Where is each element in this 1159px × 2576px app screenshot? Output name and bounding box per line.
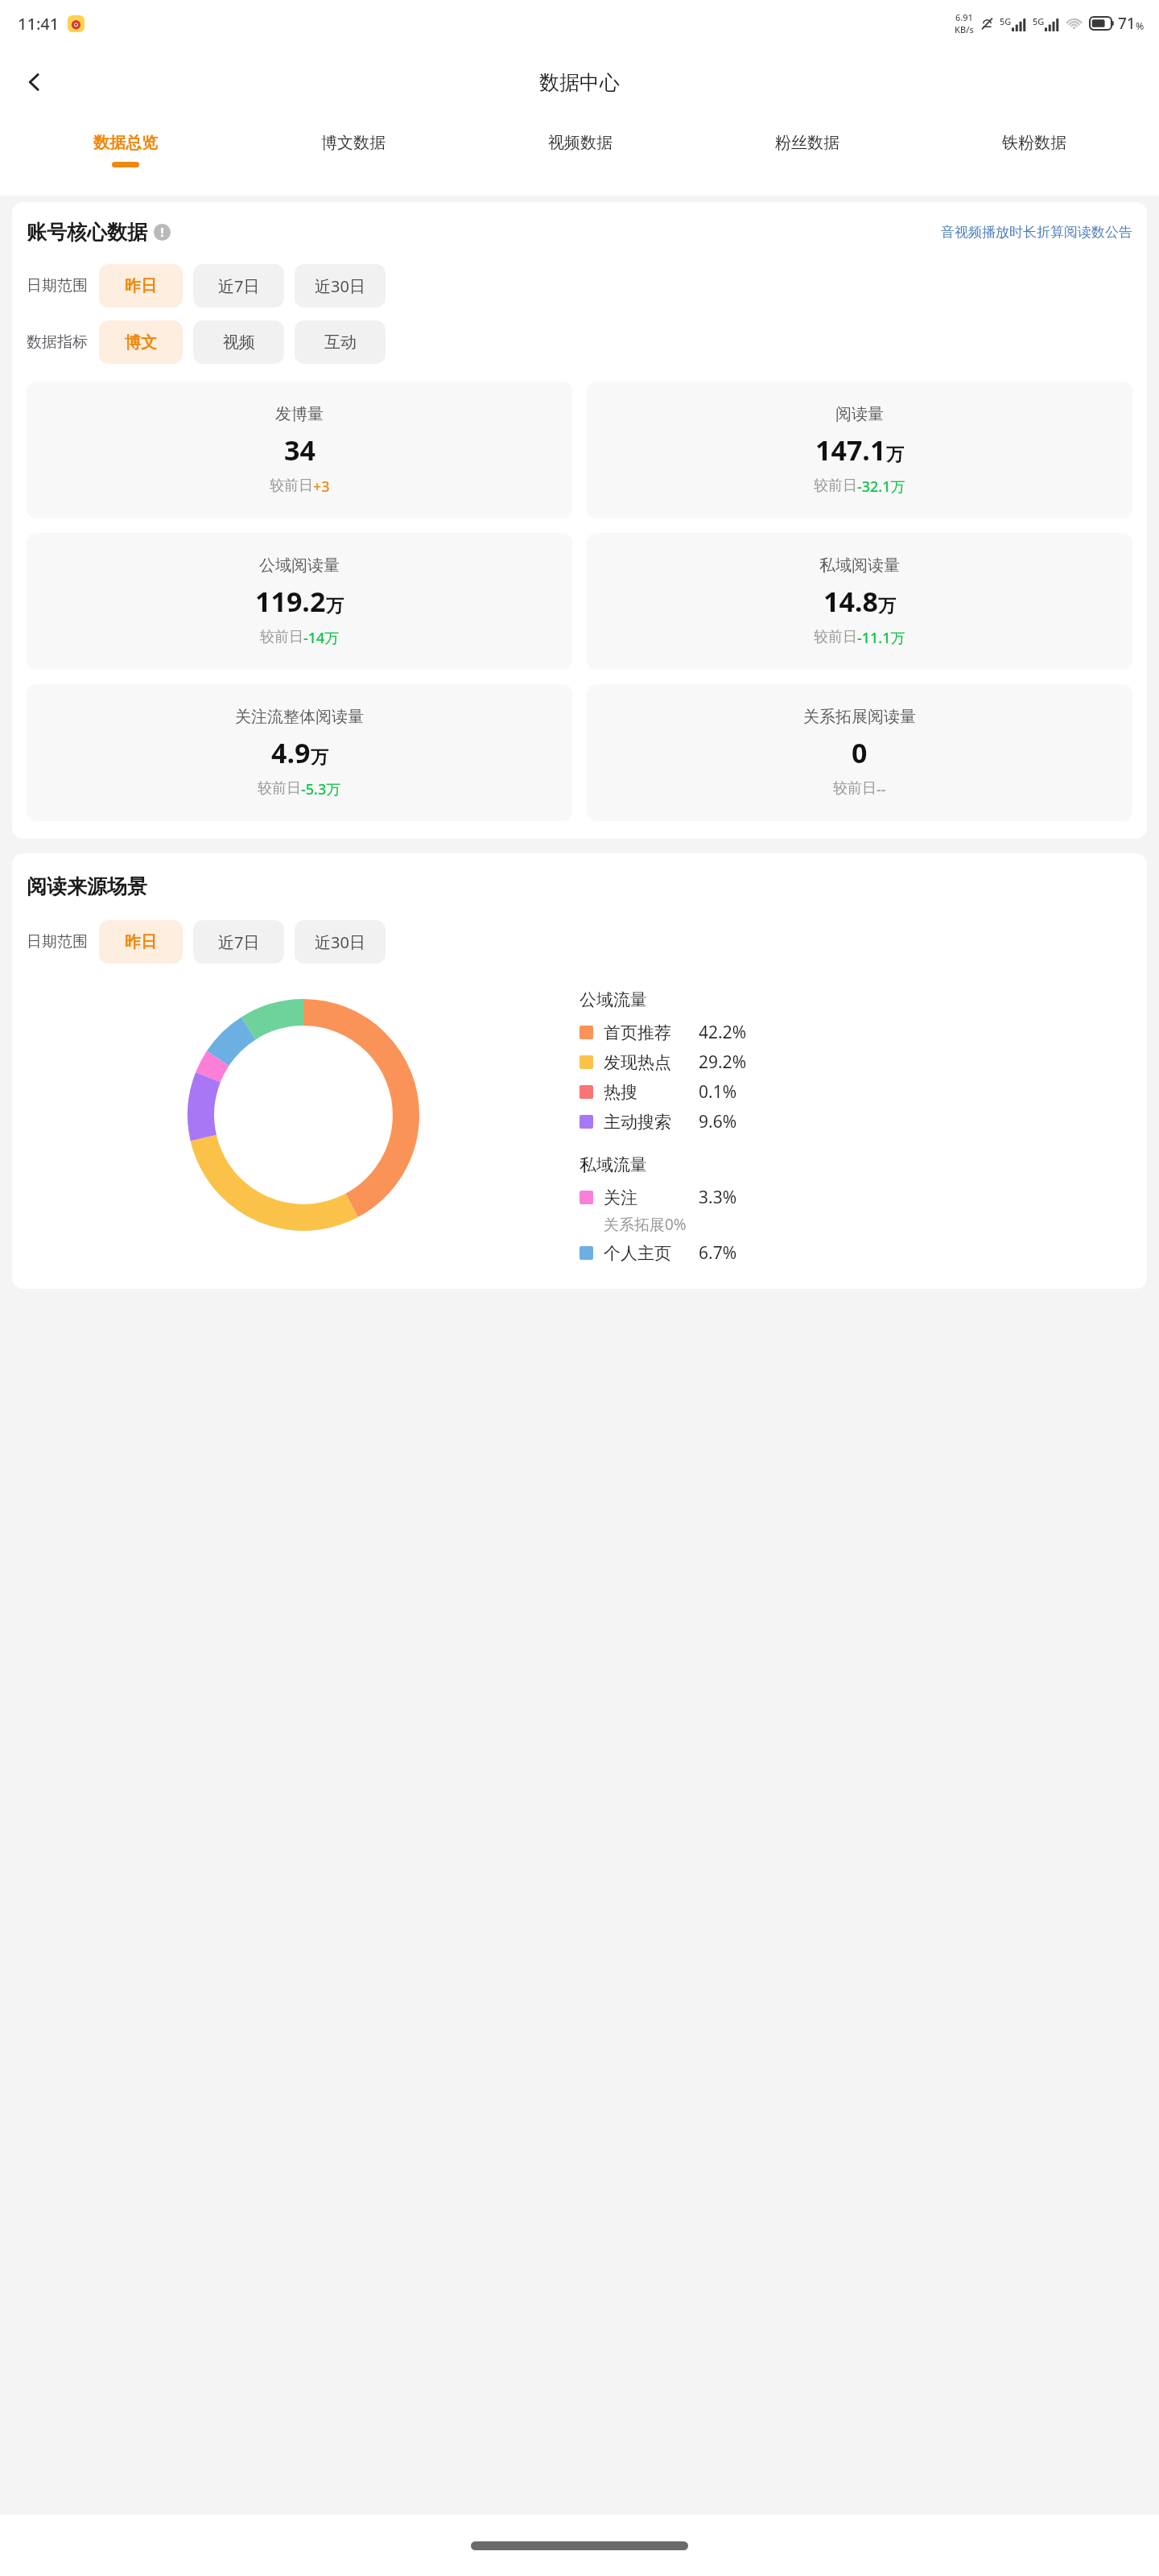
staticText: 主动搜索 [604, 1112, 699, 1133]
staticText: 11:41 [18, 13, 60, 35]
staticText: 较前日 [260, 628, 303, 646]
staticText: 71 [1118, 13, 1136, 34]
staticText: 29.2% [699, 1051, 747, 1074]
staticText: 近7日 [218, 931, 260, 953]
staticText: 较前日 [833, 779, 876, 798]
button[interactable]: 博文 [99, 320, 183, 364]
staticText: 较前日 [270, 477, 313, 495]
staticText: 日期范围 [27, 276, 88, 295]
staticText: 关系拓展阅读量 [803, 707, 916, 727]
staticText: 4.9 [271, 734, 311, 771]
staticText: +3 [313, 477, 330, 497]
staticText: 个人主页 [604, 1243, 699, 1264]
staticText: 万 [886, 444, 904, 466]
button[interactable]: 互动 [295, 320, 386, 364]
staticText: 阅读量 [835, 404, 884, 424]
staticText: 关注流整体阅读量 [235, 707, 364, 727]
staticText: 万 [878, 595, 896, 617]
button[interactable]: 热搜 [579, 1077, 1132, 1107]
staticText: 昨日 [125, 932, 157, 952]
staticText: 较前日 [814, 477, 857, 495]
staticText: 数据指标 [27, 332, 88, 352]
staticText: 万 [311, 746, 328, 769]
staticText: 昨日 [125, 276, 157, 296]
button[interactable]: 公域阅读量 [27, 533, 572, 670]
button[interactable]: 返回 [10, 57, 60, 107]
staticText: 铁粉数据 [1002, 133, 1066, 153]
staticText: 博文 [125, 332, 157, 353]
button[interactable]: 个人主页 [579, 1238, 1132, 1268]
staticText: 阅读来源场景 [27, 874, 147, 899]
staticText: 5G [1033, 15, 1045, 27]
button[interactable]: 主动搜索 [579, 1107, 1132, 1137]
staticText: 万 [326, 595, 344, 617]
staticText: 关系拓展0% [604, 1214, 687, 1235]
staticText: -- [876, 779, 886, 799]
staticText: 发博量 [275, 404, 324, 424]
staticText: 119.2 [255, 583, 326, 620]
button[interactable]: 数据总览 [11, 118, 239, 196]
staticText: 热搜 [604, 1082, 699, 1103]
staticText: -14万 [303, 628, 340, 648]
staticText: 6.91 [955, 11, 973, 23]
staticText: 数据总览 [93, 133, 158, 153]
staticText: 发现热点 [604, 1052, 699, 1073]
staticText: 互动 [324, 332, 357, 353]
staticText: 0 [852, 734, 868, 771]
button[interactable]: 昨日 [99, 920, 183, 964]
button[interactable]: 铁粉数据 [921, 118, 1148, 196]
button[interactable]: 发博量 [27, 382, 572, 518]
staticText: 公域流量 [579, 989, 647, 1010]
staticText: 公域阅读量 [259, 555, 340, 576]
staticText: 较前日 [814, 628, 857, 646]
button[interactable]: 首页推荐 [579, 1018, 1132, 1047]
staticText: KB/s [955, 23, 974, 35]
staticText: 14.8 [823, 583, 878, 620]
staticText: 数据中心 [539, 70, 620, 95]
button[interactable]: 发现热点 [579, 1047, 1132, 1077]
staticText: 6.7% [699, 1241, 737, 1265]
button[interactable]: 博文数据 [239, 118, 467, 196]
button[interactable]: 关注流整体阅读量 [27, 684, 572, 821]
staticText: 日期范围 [27, 932, 88, 952]
button[interactable]: 昨日 [99, 264, 183, 308]
staticText: 私域阅读量 [819, 555, 900, 576]
staticText: 视频 [223, 332, 255, 353]
staticText: 9.6% [699, 1110, 737, 1133]
button[interactable]: 粉丝数据 [694, 118, 921, 196]
button[interactable]: 视频数据 [467, 118, 694, 196]
button[interactable]: 近7日 [193, 920, 284, 964]
staticText: -11.1万 [857, 628, 905, 648]
button[interactable]: 近30日 [295, 264, 386, 308]
staticText: 首页推荐 [604, 1022, 699, 1043]
staticText: 34 [284, 431, 316, 469]
staticText: 42.2% [699, 1021, 747, 1044]
staticText: 0.1% [699, 1080, 737, 1104]
staticText: 账号核心数据 [27, 220, 147, 245]
button[interactable]: 近7日 [193, 264, 284, 308]
button[interactable]: 音视频播放时长折算阅读数公告 [941, 224, 1132, 241]
staticText: % [1136, 19, 1145, 32]
staticText: 5G [1000, 15, 1012, 27]
staticText: 关注 [604, 1187, 699, 1208]
button[interactable]: 视频 [193, 320, 284, 364]
button[interactable]: 近30日 [295, 920, 386, 964]
staticText: -32.1万 [857, 477, 905, 497]
staticText: 近30日 [315, 275, 365, 297]
button[interactable]: 私域阅读量 [587, 533, 1132, 670]
staticText: 3.3% [699, 1186, 737, 1209]
button[interactable]: 说明 [154, 224, 171, 241]
staticText: 147.1 [815, 431, 886, 469]
button[interactable]: 关注 [579, 1183, 1132, 1212]
staticText: 较前日 [258, 779, 301, 798]
staticText: 博文数据 [321, 133, 386, 153]
staticText: -5.3万 [301, 779, 341, 799]
button[interactable]: 关系拓展阅读量 [587, 684, 1132, 821]
staticText: 私域流量 [579, 1154, 647, 1175]
button[interactable]: 阅读量 [587, 382, 1132, 518]
staticText: 近7日 [218, 275, 260, 297]
staticText: 粉丝数据 [775, 133, 839, 153]
staticText: 视频数据 [548, 133, 612, 153]
staticText: 音视频播放时长折算阅读数公告 [941, 224, 1132, 241]
staticText: 近30日 [315, 931, 365, 953]
